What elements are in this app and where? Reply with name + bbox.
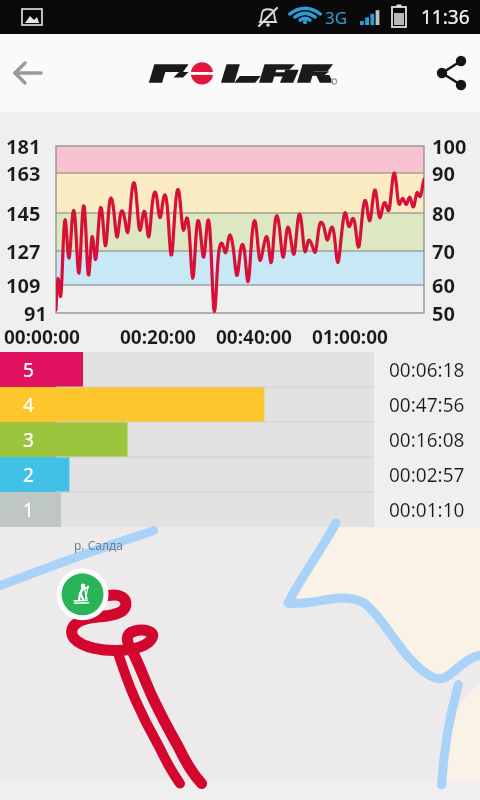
button[interactable]: 2 <box>0 457 480 492</box>
staticText: 5 <box>23 357 34 383</box>
staticText: 3G <box>325 6 348 29</box>
button[interactable]: 5 <box>0 352 480 387</box>
staticText: р. Салда <box>74 537 123 553</box>
staticText: 109 <box>6 272 41 299</box>
staticText: 00:01:10 <box>389 497 465 523</box>
staticText: 50 <box>432 300 455 327</box>
staticText: 163 <box>6 160 41 187</box>
staticText: 00:06:18 <box>389 357 465 383</box>
staticText: 00:47:56 <box>389 392 465 418</box>
button[interactable]: 3 <box>0 422 480 457</box>
staticText: 127 <box>6 238 41 265</box>
staticText: 145 <box>6 200 41 227</box>
staticText: 00:02:57 <box>389 462 465 488</box>
staticText: 60 <box>432 272 455 299</box>
staticText: 01:00:00 <box>312 324 388 350</box>
staticText: 80 <box>432 200 455 227</box>
button[interactable]: Route map <box>0 527 480 781</box>
button[interactable]: 1 <box>0 492 480 527</box>
staticText: 00:40:00 <box>216 324 292 350</box>
staticText: 00:20:00 <box>120 324 196 350</box>
button[interactable]: Back <box>0 45 56 101</box>
staticText: 100 <box>432 133 467 160</box>
staticText: 1 <box>23 497 34 523</box>
staticText: 00:16:08 <box>389 427 465 453</box>
button[interactable]: Share <box>424 45 480 101</box>
staticText: 4 <box>23 392 34 418</box>
staticText: 181 <box>6 133 41 160</box>
staticText: 00:00:00 <box>4 324 80 350</box>
staticText: 91 <box>24 300 47 327</box>
staticText: 90 <box>432 160 455 187</box>
staticText: 3 <box>23 427 34 453</box>
button[interactable]: 4 <box>0 387 480 422</box>
staticText: 2 <box>23 462 34 488</box>
staticText: 70 <box>432 238 455 265</box>
staticText: 11:36 <box>421 4 470 30</box>
